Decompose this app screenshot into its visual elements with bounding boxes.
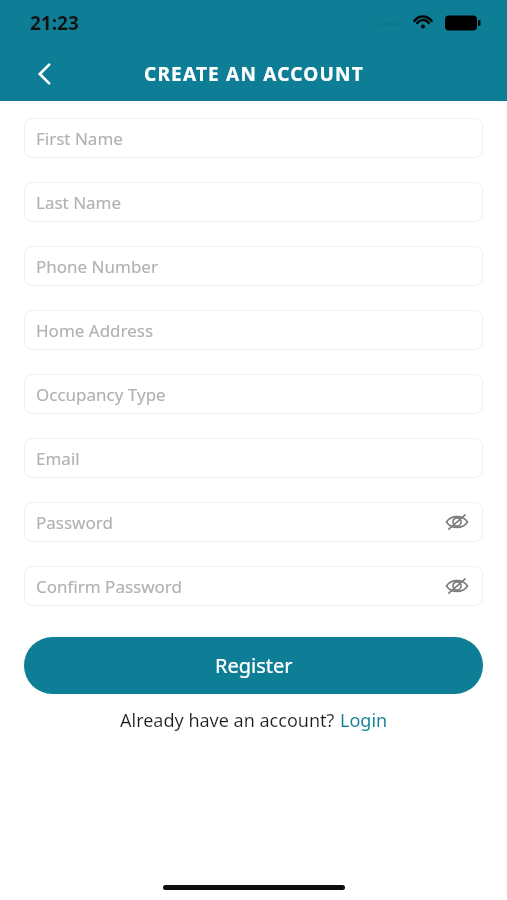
button[interactable]: Home Address — [24, 310, 483, 350]
staticText: Register — [215, 652, 293, 679]
button[interactable]: Login — [340, 708, 388, 733]
staticText: Phone Number — [36, 255, 158, 278]
button[interactable]: First Name — [24, 118, 483, 158]
staticText: First Name — [36, 127, 123, 150]
staticText: Last Name — [36, 191, 122, 214]
staticText: Confirm Password — [36, 575, 182, 598]
button[interactable]: Last Name — [24, 182, 483, 222]
staticText: Occupancy Type — [36, 383, 166, 406]
staticText: 21:23 — [30, 10, 79, 36]
button[interactable]: Phone Number — [24, 246, 483, 286]
staticText: Email — [36, 447, 80, 470]
button[interactable]: Confirm Password — [24, 566, 483, 606]
staticText: CREATE AN ACCOUNT — [144, 61, 364, 87]
staticText: Already have an account? — [120, 708, 340, 733]
button[interactable]: Show password — [441, 506, 473, 538]
button[interactable]: Email — [24, 438, 483, 478]
button[interactable]: Password — [24, 502, 483, 542]
staticText: Password — [36, 511, 113, 534]
button[interactable]: Back — [22, 51, 68, 97]
staticText: Home Address — [36, 319, 154, 342]
button[interactable]: Show password — [441, 570, 473, 602]
staticText: Login — [340, 708, 388, 733]
button[interactable]: Register — [24, 637, 483, 694]
button[interactable]: Occupancy Type — [24, 374, 483, 414]
